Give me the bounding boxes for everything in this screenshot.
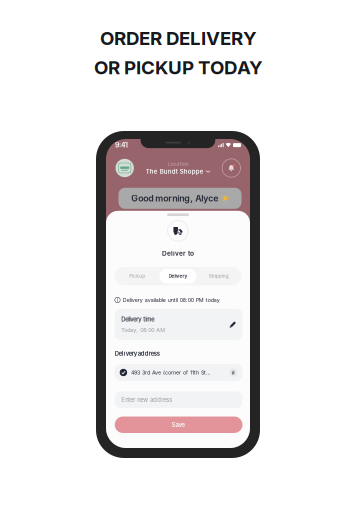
button[interactable]: Pickup xyxy=(115,269,159,283)
button[interactable]: Save xyxy=(115,416,242,433)
button[interactable]: 493 3rd Ave (corner of 11th St… xyxy=(115,364,242,381)
staticText: Today, 08:00 AM xyxy=(121,327,165,333)
staticText: Save xyxy=(172,421,186,428)
staticText: OR PICKUP TODAY xyxy=(94,56,263,79)
button[interactable]: Delivery xyxy=(159,269,196,283)
staticText: Good morning, Alyce xyxy=(131,193,218,204)
button[interactable]: Shipping xyxy=(196,269,241,283)
staticText: 493 3rd Ave (corner of 11th St… xyxy=(131,369,211,376)
staticText: Enter new address xyxy=(121,396,172,403)
staticText: Delivery xyxy=(168,273,187,279)
staticText: Location xyxy=(167,161,188,167)
staticText: Shipping xyxy=(209,273,229,279)
staticText: 9:41 xyxy=(115,141,128,149)
staticText: Deliver to xyxy=(162,249,194,257)
button[interactable]: Notifications xyxy=(222,159,240,177)
button[interactable]: Location xyxy=(146,161,210,175)
staticText: Delivery time xyxy=(121,316,154,323)
button[interactable]: Store logo xyxy=(115,159,134,177)
button[interactable]: Delivery time xyxy=(115,309,242,340)
staticText: Delivery address xyxy=(115,350,160,357)
staticText: ORDER DELIVERY xyxy=(100,27,257,50)
button[interactable]: Enter new address xyxy=(115,391,242,408)
staticText: The Bundt Shoppe xyxy=(146,168,204,175)
staticText: Pickup xyxy=(129,273,145,279)
staticText: Delivery available until 08:00 PM today xyxy=(123,297,220,303)
